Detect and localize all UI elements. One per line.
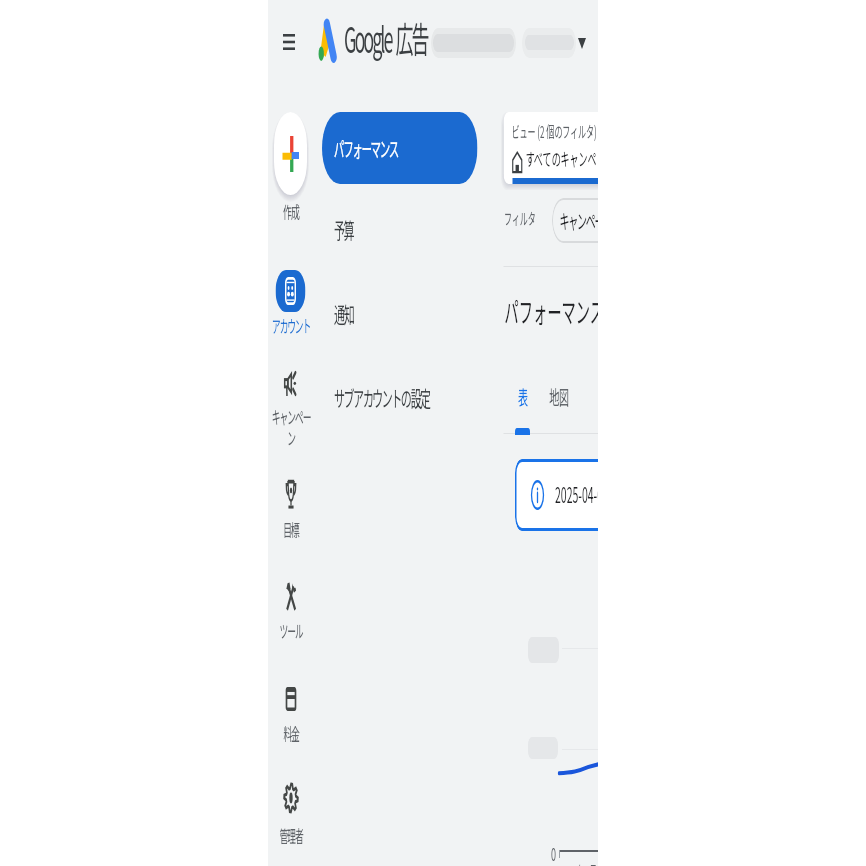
button[interactable]: 予算 xyxy=(322,193,477,264)
staticText: アカウント xyxy=(268,313,314,338)
staticText: Google 広告 xyxy=(344,11,428,63)
staticText: キャンペーン xyxy=(269,404,313,450)
button[interactable]: 通知 xyxy=(322,277,477,348)
button[interactable]: 管理者 xyxy=(268,780,314,858)
staticText: 作成 xyxy=(268,199,314,224)
staticText: キャンペー xyxy=(559,206,598,235)
button[interactable]: アカウント xyxy=(268,268,314,338)
button[interactable]: ツール xyxy=(268,578,314,656)
button[interactable]: Menu xyxy=(279,22,299,62)
button[interactable]: サブアカウントの設定 xyxy=(322,361,477,432)
staticText: ツール xyxy=(269,618,313,643)
button[interactable]: 地図 xyxy=(549,382,569,411)
staticText: パフォーマンス xyxy=(334,133,398,163)
staticText: パフォーマンス xyxy=(504,290,598,331)
staticText: 管理者 xyxy=(269,823,313,848)
button[interactable]: キャンペー xyxy=(552,198,598,243)
button[interactable]: パフォーマンス xyxy=(322,112,477,184)
staticText: ビュー (2 個のフィルタ) xyxy=(511,119,597,142)
button[interactable]: ビュー (2 個のフィルタ) xyxy=(503,112,598,184)
staticText: 2025-04-01 xyxy=(555,479,598,509)
button[interactable]: 表 xyxy=(518,382,528,411)
button[interactable]: Account selector xyxy=(429,22,579,66)
staticText: 予算 xyxy=(334,213,353,245)
button[interactable]: キャンペーン xyxy=(268,369,314,447)
staticText: 0 xyxy=(551,840,556,866)
button[interactable]: 目標 xyxy=(268,476,314,554)
button[interactable]: 料金 xyxy=(268,681,314,759)
staticText: 目標 xyxy=(269,517,313,542)
button[interactable]: 2025-04-01 xyxy=(515,459,598,531)
staticText: 料金 xyxy=(269,721,313,746)
staticText: すべてのキャンペ xyxy=(525,145,597,171)
staticText: サブアカウントの設定 xyxy=(334,381,430,413)
staticText: 2025年4月 xyxy=(561,860,597,866)
staticText: フィルタ xyxy=(504,206,536,229)
button[interactable]: Create xyxy=(268,104,314,222)
staticText: 通知 xyxy=(334,297,353,329)
